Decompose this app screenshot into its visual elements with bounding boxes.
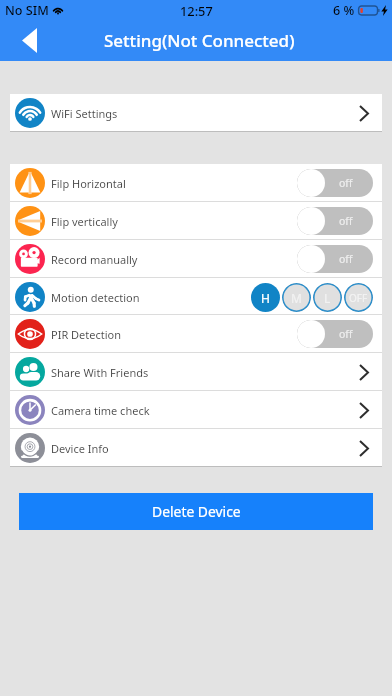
staticText: Setting(Not Connected) xyxy=(104,29,295,52)
staticText: 12:57 xyxy=(180,2,213,19)
button[interactable]: Delete Device xyxy=(19,493,373,530)
staticText: Record manually xyxy=(51,252,138,267)
staticText: M xyxy=(291,290,302,306)
button[interactable]: Camera time check xyxy=(10,391,382,429)
button[interactable]: Flip vertically xyxy=(10,202,382,240)
button[interactable]: H xyxy=(251,283,280,312)
staticText: WiFi Settings xyxy=(51,106,118,121)
staticText: OFF xyxy=(349,291,368,305)
button[interactable]: off xyxy=(297,245,373,273)
button[interactable]: off xyxy=(297,320,373,348)
staticText: Share With Friends xyxy=(51,365,149,380)
staticText: off xyxy=(339,176,353,190)
button[interactable]: WiFi Settings xyxy=(10,94,382,132)
staticText: Device Info xyxy=(51,441,109,456)
button[interactable]: M xyxy=(282,283,311,312)
staticText: Delete Device xyxy=(152,502,241,521)
button[interactable]: L xyxy=(313,283,342,312)
button[interactable]: Share With Friends xyxy=(10,353,382,391)
staticText: off xyxy=(339,214,353,228)
button[interactable]: off xyxy=(297,207,373,235)
staticText: off xyxy=(339,252,353,266)
button[interactable]: Back xyxy=(0,20,58,61)
button[interactable]: Motion detection xyxy=(10,278,382,316)
button[interactable]: Device Info xyxy=(10,429,382,467)
staticText: No SIM xyxy=(5,2,49,19)
staticText: 6 % xyxy=(333,2,355,19)
button[interactable]: Filp Horizontal xyxy=(10,164,382,202)
staticText: Flip vertically xyxy=(51,214,118,229)
staticText: off xyxy=(339,327,353,341)
staticText: Camera time check xyxy=(51,403,150,418)
staticText: PIR Detection xyxy=(51,327,122,342)
staticText: H xyxy=(261,290,270,306)
button[interactable]: OFF xyxy=(344,283,373,312)
button[interactable]: PIR Detection xyxy=(10,315,382,353)
staticText: Filp Horizontal xyxy=(51,176,126,191)
staticText: L xyxy=(324,290,331,306)
staticText: Motion detection xyxy=(51,290,140,305)
button[interactable]: Record manually xyxy=(10,240,382,278)
button[interactable]: off xyxy=(297,169,373,197)
